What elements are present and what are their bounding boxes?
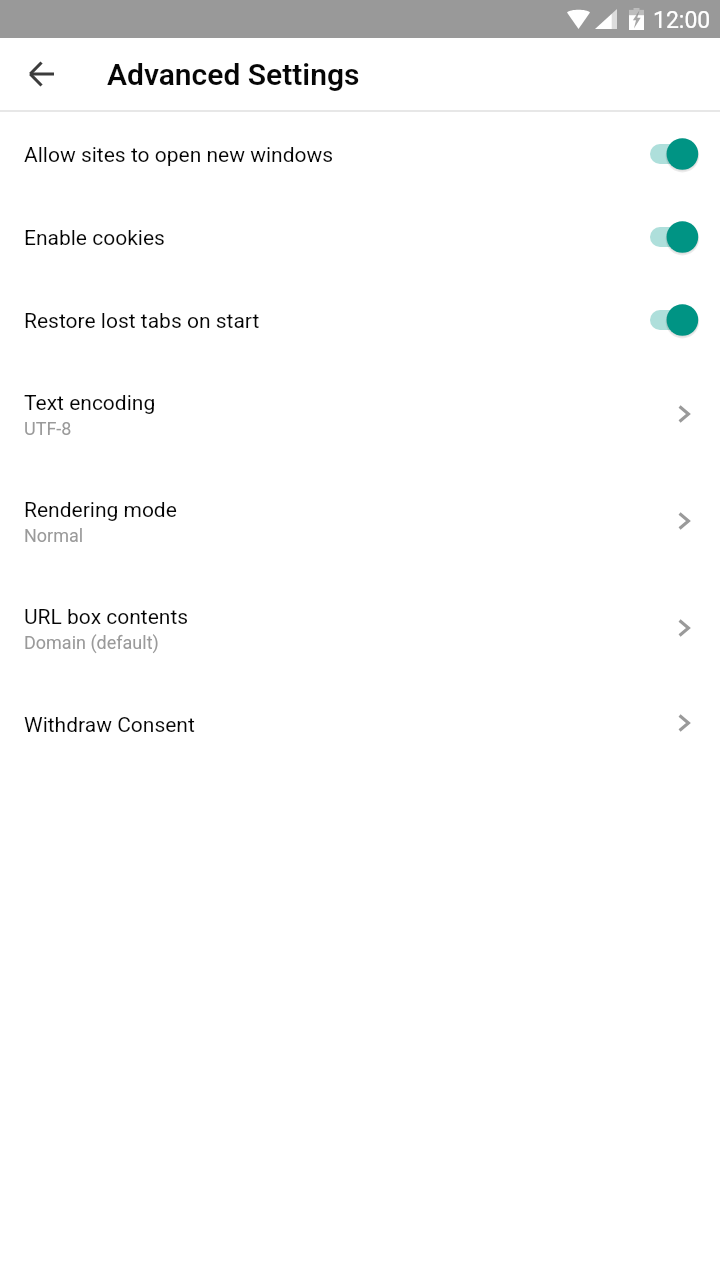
staticText: Withdraw Consent (24, 713, 195, 738)
button[interactable]: Navigate up (14, 46, 70, 102)
button[interactable]: Restore lost tabs on start (0, 280, 720, 363)
staticText: Rendering mode (24, 498, 177, 523)
button[interactable]: Text encoding (0, 363, 720, 470)
staticText: Normal (24, 525, 84, 546)
button[interactable]: URL box contents (0, 577, 720, 684)
button[interactable]: Toggle setting (650, 217, 698, 260)
staticText: Advanced Settings (107, 57, 360, 92)
staticText: URL box contents (24, 605, 189, 630)
staticText: Text encoding (24, 391, 156, 416)
button[interactable]: Withdraw Consent (0, 684, 720, 767)
staticText: UTF-8 (24, 418, 72, 439)
staticText: Restore lost tabs on start (24, 309, 650, 334)
staticText: Enable cookies (24, 226, 650, 251)
staticText: Domain (default) (24, 632, 159, 653)
button[interactable]: Allow sites to open new windows (0, 114, 720, 197)
staticText: Allow sites to open new windows (24, 143, 650, 168)
button[interactable]: Enable cookies (0, 197, 720, 280)
button[interactable]: Rendering mode (0, 470, 720, 577)
staticText: 12:00 (653, 7, 711, 34)
button[interactable]: Toggle setting (650, 134, 698, 177)
button[interactable]: Toggle setting (650, 300, 698, 343)
